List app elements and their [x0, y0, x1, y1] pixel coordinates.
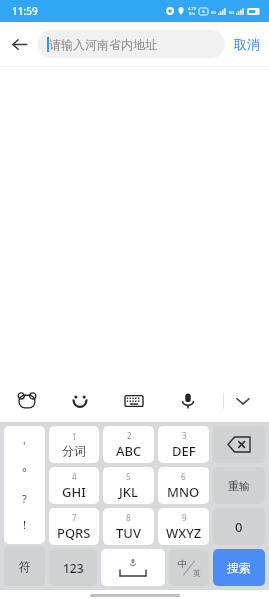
staticText: 8 — [126, 512, 131, 523]
button[interactable]: ' — [4, 426, 45, 544]
staticText: 11:59 — [12, 4, 38, 18]
button[interactable]: 取消 — [234, 36, 260, 52]
button[interactable]: 中 — [169, 549, 209, 586]
staticText: JKL — [119, 483, 138, 501]
staticText: ' — [23, 438, 26, 453]
staticText: 中 — [178, 558, 187, 569]
button[interactable]: 4 — [49, 467, 99, 504]
button[interactable]: Keyboard layout — [115, 382, 153, 420]
staticText: DEF — [172, 442, 196, 460]
button[interactable]: 2 — [103, 426, 154, 463]
button[interactable]: 123 — [49, 549, 97, 586]
button[interactable]: Hide keyboard — [224, 382, 262, 420]
staticText: ! — [23, 517, 26, 532]
button[interactable]: 重输 — [213, 467, 265, 504]
staticText: 请输入河南省内地址 — [49, 37, 157, 52]
button[interactable]: 7 — [49, 508, 99, 545]
staticText: TUV — [116, 524, 141, 542]
staticText: 7 — [72, 512, 77, 523]
staticText: 5G — [229, 10, 235, 15]
button[interactable]: 8 — [103, 508, 154, 545]
staticText: 分词 — [62, 443, 86, 458]
button[interactable]: 5 — [103, 467, 154, 504]
staticText: MNO — [167, 483, 200, 501]
button[interactable]: 请输入河南省内地址 — [38, 30, 225, 58]
button[interactable]: 6 — [158, 467, 209, 504]
staticText: ° — [22, 464, 27, 479]
button[interactable]: Space — [101, 549, 165, 586]
staticText: PQRS — [57, 524, 91, 542]
staticText: 1 — [72, 431, 77, 442]
staticText: ABC — [116, 442, 142, 460]
button[interactable]: 符 — [4, 546, 45, 586]
staticText: 4.70 — [188, 6, 196, 11]
button[interactable]: Baidu input — [8, 382, 46, 420]
staticText: 重输 — [228, 479, 250, 493]
staticText: 搜索 — [227, 560, 251, 575]
staticText: ? — [22, 491, 27, 506]
staticText: 4 — [72, 471, 77, 482]
button[interactable]: 0 — [213, 508, 265, 545]
staticText: 0 — [235, 518, 243, 536]
staticText: 取消 — [234, 36, 260, 52]
button[interactable]: Back — [0, 25, 38, 63]
button[interactable]: Emoji — [61, 382, 99, 420]
staticText: K/s — [189, 11, 195, 16]
staticText: 9 — [182, 512, 187, 523]
staticText: 5 — [126, 471, 131, 482]
staticText: 5G — [211, 10, 217, 15]
button[interactable]: Voice input — [169, 382, 207, 420]
staticText: 2 — [127, 430, 132, 441]
button[interactable]: 1 — [49, 426, 99, 463]
staticText: 6 — [181, 471, 186, 482]
button[interactable]: Delete — [213, 426, 265, 463]
staticText: 英 — [193, 568, 201, 578]
staticText: GHI — [62, 483, 86, 501]
staticText: 3 — [182, 430, 187, 441]
staticText: WXYZ — [166, 524, 202, 542]
button[interactable]: 3 — [158, 426, 209, 463]
staticText: 符 — [19, 559, 31, 574]
staticText: 123 — [63, 560, 84, 576]
button[interactable]: 9 — [158, 508, 209, 545]
button[interactable]: 搜索 — [213, 549, 265, 586]
